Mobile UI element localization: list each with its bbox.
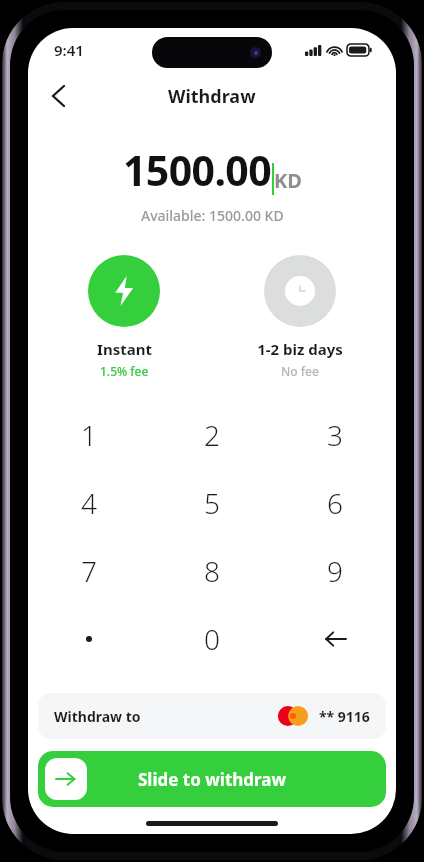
button[interactable]: 6 (273, 469, 396, 537)
staticText: 1-2 biz days (257, 339, 343, 359)
button[interactable]: Instant (74, 255, 174, 379)
staticText: KD (274, 167, 302, 194)
staticText: Withdraw (168, 84, 256, 109)
staticText: 6 (327, 484, 343, 522)
button[interactable] (28, 605, 150, 673)
staticText: Available: 1500.00 KD (141, 206, 284, 225)
button[interactable]: 5 (150, 469, 273, 537)
staticText: 8 (204, 552, 220, 590)
other: Backspace (273, 605, 396, 673)
button[interactable]: 0 (150, 605, 273, 673)
button[interactable]: 4 (28, 469, 150, 537)
staticText: 1500.00 (123, 142, 272, 198)
staticText: 0 (204, 620, 220, 658)
staticText: 9 (327, 552, 343, 590)
staticText: 5 (204, 484, 220, 522)
staticText: 3 (327, 416, 343, 454)
button[interactable]: 1-2 biz days (250, 255, 350, 379)
staticText: 4 (81, 484, 97, 522)
staticText: 9:41 (54, 40, 84, 60)
button[interactable]: Backspace (273, 605, 396, 673)
staticText: Slide to withdraw (138, 768, 287, 791)
staticText: Instant (97, 339, 152, 359)
staticText: 2 (204, 416, 220, 454)
staticText: No fee (281, 363, 319, 379)
button[interactable]: 3 (273, 401, 396, 469)
button[interactable]: 8 (150, 537, 273, 605)
button[interactable]: Back (36, 74, 80, 118)
button[interactable]: 1 (28, 401, 150, 469)
button[interactable]: Slide to withdraw (38, 751, 386, 807)
button[interactable]: 2 (150, 401, 273, 469)
staticText: 7 (81, 552, 97, 590)
button[interactable]: 9 (273, 537, 396, 605)
staticText: 1 (81, 416, 97, 454)
staticText: Withdraw to (54, 707, 141, 726)
staticText: ** 9116 (319, 707, 370, 726)
button[interactable]: 7 (28, 537, 150, 605)
staticText: 1.5% fee (100, 363, 149, 379)
button[interactable]: Withdraw to (38, 693, 386, 739)
